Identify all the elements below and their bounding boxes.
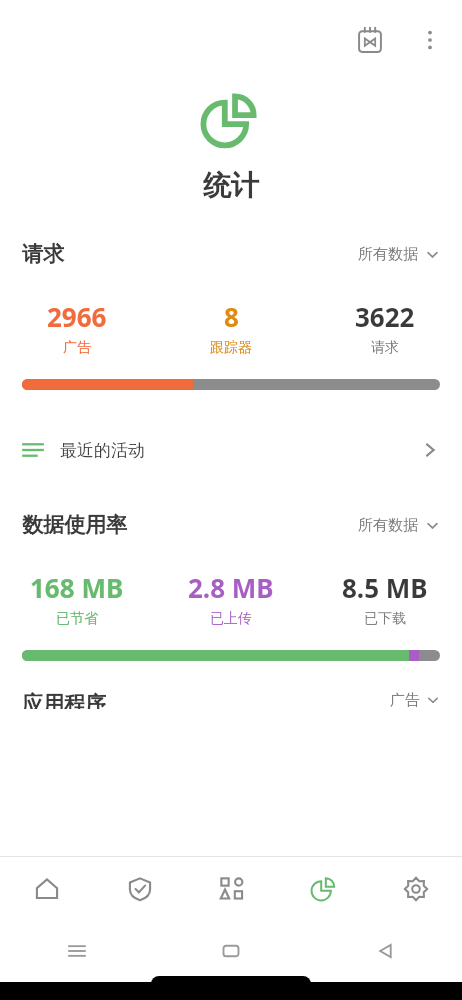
staticText: 应用程序 xyxy=(22,691,106,709)
button[interactable]: Home xyxy=(0,857,93,920)
button[interactable]: Recents xyxy=(0,920,154,982)
button[interactable]: 数据使用率 xyxy=(0,512,462,538)
staticText: 8.5 MB xyxy=(342,570,428,605)
button[interactable]: Settings xyxy=(370,857,462,920)
staticText: 已节省 xyxy=(56,610,98,628)
staticText: 广告 xyxy=(390,691,420,709)
staticText: 请求 xyxy=(22,241,64,267)
staticText: 2.8 MB xyxy=(188,570,274,605)
staticText: 已上传 xyxy=(210,610,252,628)
staticText: 数据使用率 xyxy=(22,512,127,538)
button[interactable]: Statistics xyxy=(278,857,370,920)
staticText: 最近的活动 xyxy=(60,440,145,461)
staticText: 2966 xyxy=(47,299,107,334)
button[interactable]: More options xyxy=(408,18,452,62)
button[interactable]: 2.8 MB xyxy=(154,570,308,628)
staticText: 跟踪器 xyxy=(210,339,252,357)
staticText: 广告 xyxy=(63,339,91,357)
staticText: 3622 xyxy=(355,299,415,334)
staticText: 所有数据 xyxy=(358,516,418,535)
button[interactable]: 最近的活动 xyxy=(0,424,462,476)
staticText: 统计 xyxy=(0,168,462,203)
button[interactable]: 请求 xyxy=(0,241,462,267)
staticText: 168 MB xyxy=(30,570,124,605)
button[interactable]: Apps xyxy=(186,857,278,920)
button[interactable]: 3622 xyxy=(308,299,462,357)
button[interactable]: All time range xyxy=(346,16,394,64)
staticText: 8 xyxy=(224,299,239,334)
button[interactable]: 8.5 MB xyxy=(308,570,462,628)
button[interactable]: Protection xyxy=(93,857,186,920)
button[interactable]: 所有数据 xyxy=(358,516,440,535)
button[interactable]: Back xyxy=(308,920,462,982)
staticText: 已下载 xyxy=(364,610,406,628)
button[interactable]: 所有数据 xyxy=(358,245,440,264)
button[interactable]: 2966 xyxy=(0,299,154,357)
staticText: 请求 xyxy=(371,339,399,357)
button[interactable]: 应用程序 xyxy=(0,691,462,709)
staticText: 所有数据 xyxy=(358,245,418,264)
button[interactable]: 8 xyxy=(154,299,308,357)
button[interactable]: Home xyxy=(154,920,308,982)
button[interactable]: 168 MB xyxy=(0,570,154,628)
